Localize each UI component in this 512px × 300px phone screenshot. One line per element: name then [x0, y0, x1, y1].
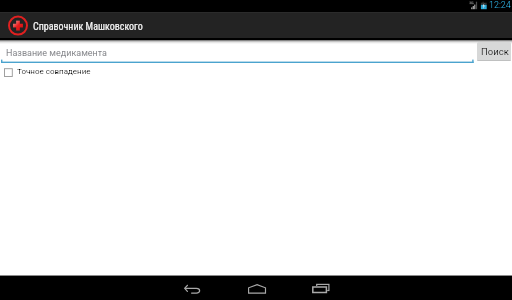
- staticText: Точное совпадение: [17, 67, 91, 76]
- staticText: Поиск: [481, 46, 509, 57]
- button[interactable]: Название медикамента: [0, 41, 475, 64]
- button[interactable]: Back: [168, 276, 216, 300]
- button[interactable]: [4, 13, 152, 38]
- button[interactable]: Поиск: [477, 42, 511, 61]
- staticText: 12:24: [489, 0, 511, 11]
- button[interactable]: Home: [232, 276, 280, 300]
- staticText: Справочник Машковского: [33, 21, 143, 33]
- button[interactable]: Точное совпадение: [4, 66, 91, 78]
- button[interactable]: Recent apps: [297, 276, 345, 300]
- staticText: Название медикамента: [6, 48, 107, 59]
